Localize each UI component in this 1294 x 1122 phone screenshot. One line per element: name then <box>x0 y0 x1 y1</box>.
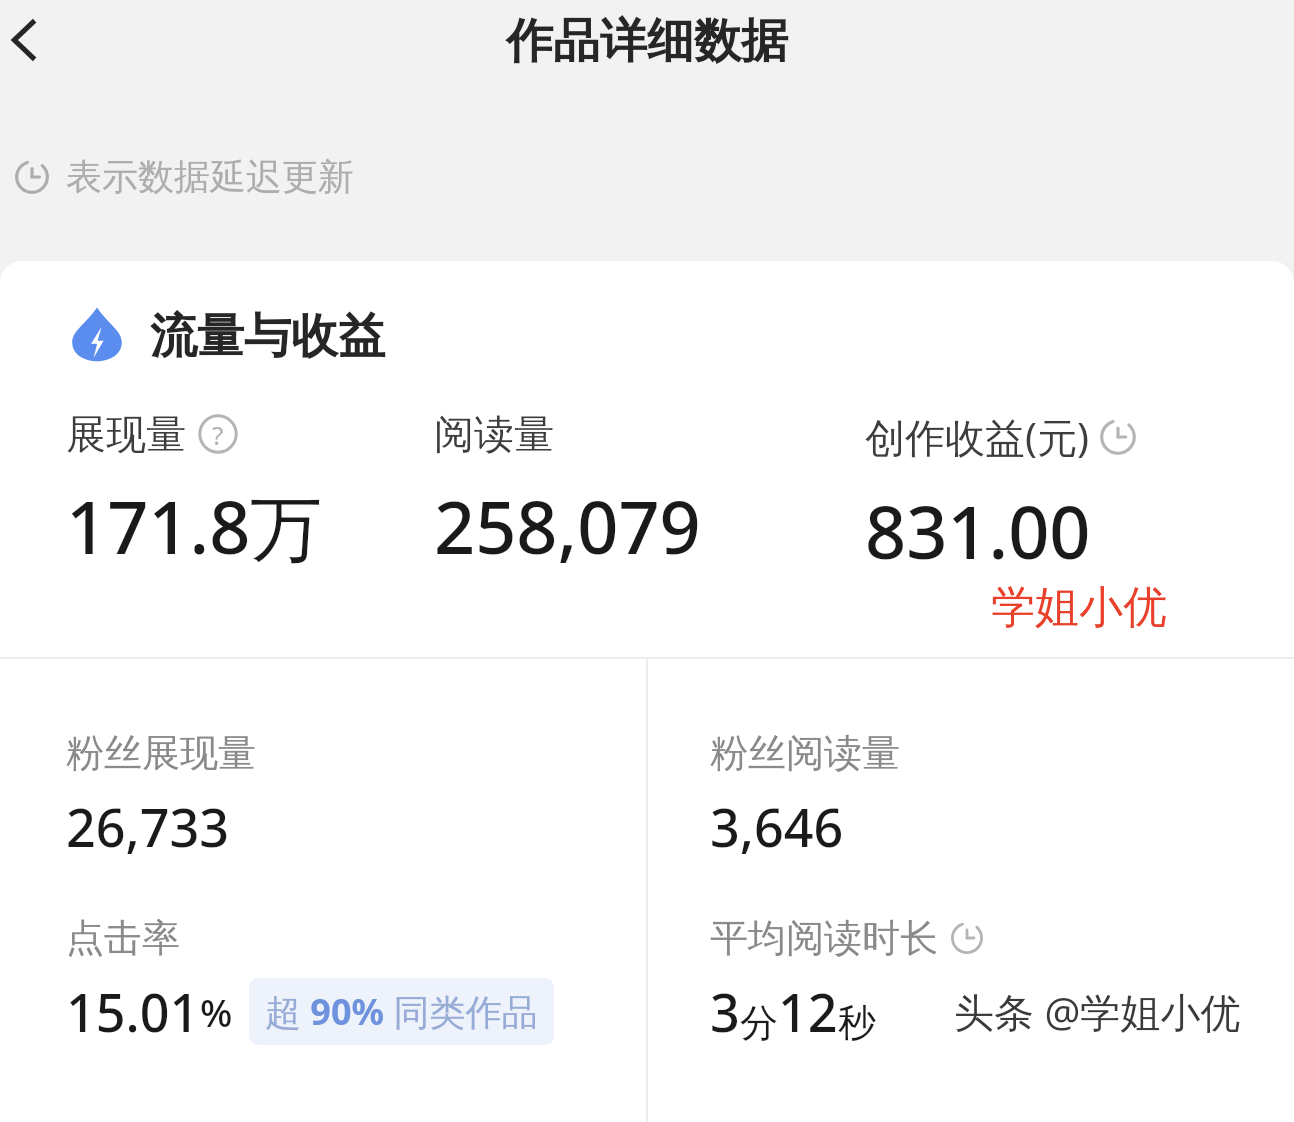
button[interactable]: 展现量 <box>66 409 432 575</box>
staticText: 15.01 <box>66 976 200 1047</box>
staticText: 12 <box>778 976 838 1047</box>
button[interactable]: Back <box>0 0 64 80</box>
staticText: 点击率 <box>66 914 180 962</box>
staticText: 3,646 <box>710 791 844 862</box>
staticText: 秒 <box>838 999 876 1047</box>
staticText: 分 <box>740 999 778 1047</box>
staticText: ? <box>212 417 224 452</box>
staticText: 3 <box>710 976 740 1047</box>
staticText: 头条 @学姐小优 <box>954 984 1241 1039</box>
staticText: 粉丝阅读量 <box>710 729 900 777</box>
staticText: 作品详细数据 <box>506 12 788 71</box>
button[interactable]: 创作收益(元) <box>865 409 1294 580</box>
button[interactable]: 流量与收益 <box>66 305 385 367</box>
button[interactable]: 阅读量 <box>434 409 863 575</box>
staticText: 粉丝展现量 <box>66 729 256 777</box>
staticText: 学姐小优 <box>991 580 1167 635</box>
button[interactable]: 超 90% 同类作品 <box>249 978 554 1045</box>
staticText: 171.8万 <box>66 477 323 575</box>
staticText: 流量与收益 <box>150 307 385 366</box>
staticText: % <box>200 986 233 1038</box>
staticText: 展现量 <box>66 409 186 459</box>
staticText: 831.00 <box>865 482 1091 580</box>
staticText: 26,733 <box>66 791 229 862</box>
staticText: 平均阅读时长 <box>710 914 938 962</box>
staticText: 阅读量 <box>434 409 554 459</box>
staticText: 创作收益(元) <box>865 409 1089 464</box>
staticText: 表示数据延迟更新 <box>66 154 354 199</box>
staticText: 258,079 <box>434 477 701 575</box>
staticText: 超 90% 同类作品 <box>265 987 538 1036</box>
